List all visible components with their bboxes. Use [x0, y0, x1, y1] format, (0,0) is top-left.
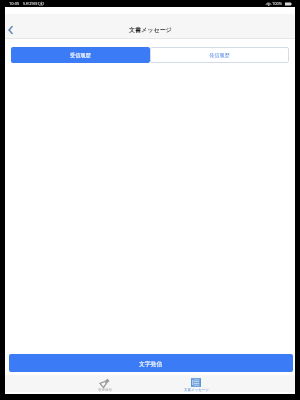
staticText: 文字発信: [139, 360, 163, 367]
staticText: 発信履歴: [209, 52, 230, 59]
button[interactable]: 発信履歴: [150, 47, 289, 63]
staticText: 文書メッセージ: [129, 26, 172, 34]
button[interactable]: Back: [5, 14, 16, 39]
staticText: 受信履歴: [70, 52, 91, 59]
button[interactable]: 受信履歴: [11, 47, 150, 63]
staticText: 文書メッセージ: [184, 388, 209, 392]
staticText: 5月29日(水): [23, 1, 45, 6]
button[interactable]: 文書メッセージ: [146, 375, 246, 392]
button[interactable]: 音声発信: [55, 375, 155, 392]
staticText: 音声発信: [98, 388, 112, 392]
staticText: 10:05: [9, 1, 20, 6]
button[interactable]: 文字発信: [9, 354, 293, 372]
staticText: 100%: [272, 1, 283, 6]
